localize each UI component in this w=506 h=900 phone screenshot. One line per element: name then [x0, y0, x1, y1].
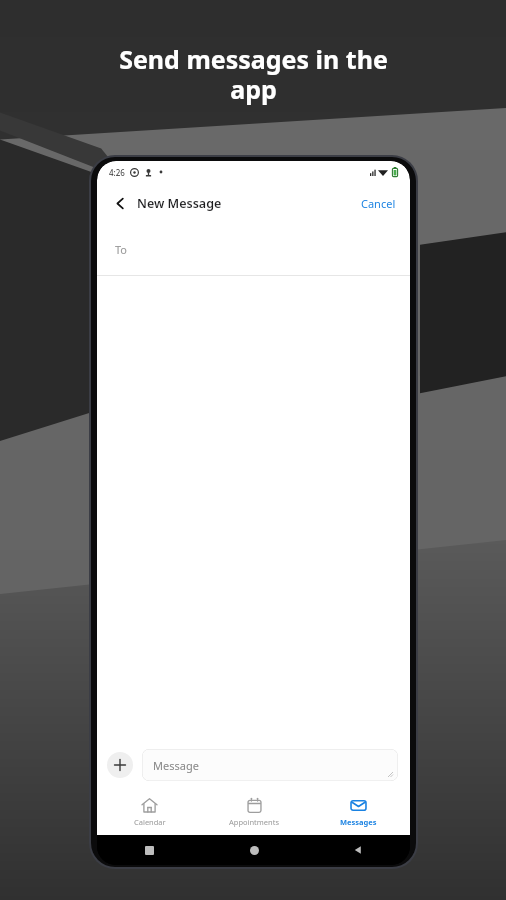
button[interactable]: Add attachment: [107, 752, 133, 778]
button[interactable]: To: [97, 223, 410, 275]
button[interactable]: Home: [202, 835, 306, 865]
staticText: New Message: [137, 195, 222, 212]
button[interactable]: Recent apps: [97, 835, 202, 865]
staticText: 4:26: [109, 167, 125, 178]
staticText: Message: [153, 758, 199, 773]
button[interactable]: Appointments: [202, 789, 306, 835]
staticText: To: [115, 242, 128, 257]
staticText: Calendar: [134, 817, 166, 827]
button[interactable]: Messages: [306, 789, 410, 835]
button[interactable]: Back: [105, 188, 135, 218]
staticText: Appointments: [229, 817, 280, 827]
button[interactable]: Calendar: [97, 789, 202, 835]
staticText: Messages: [340, 817, 377, 827]
staticText: Cancel: [361, 196, 396, 211]
button[interactable]: Back: [306, 835, 410, 865]
staticText: Send messages in the app: [119, 42, 388, 107]
button[interactable]: Cancel: [355, 191, 402, 216]
button[interactable]: Message: [142, 749, 398, 781]
